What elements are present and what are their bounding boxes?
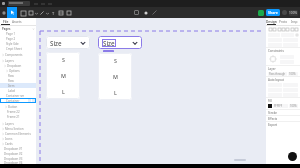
staticText: Menu Section (5, 127, 24, 131)
button[interactable]: Size (46, 36, 90, 49)
button[interactable]: Cards (0, 141, 36, 146)
staticText: Frame 22 (7, 110, 20, 114)
button[interactable]: Common Elements (0, 131, 36, 136)
button[interactable]: Container sm (0, 93, 36, 98)
button[interactable]: Shape tools (27, 9, 38, 17)
button[interactable]: M (46, 67, 80, 83)
button[interactable]: Component (143, 10, 148, 15)
button[interactable]: Page 2 (0, 36, 36, 41)
button[interactable]: M (98, 68, 132, 84)
staticText: Frame 21 (7, 115, 20, 119)
button[interactable]: Design (266, 18, 277, 25)
button[interactable]: Constraints (268, 54, 278, 64)
staticText: Layers (5, 59, 14, 63)
button[interactable]: Pages (0, 26, 36, 31)
button[interactable]: Button (0, 104, 36, 109)
button[interactable]: Assets (11, 18, 22, 25)
button[interactable]: Menu Section (0, 126, 36, 131)
button[interactable]: Align 2 (277, 27, 281, 31)
button[interactable]: Frame tool (19, 9, 27, 17)
staticText: M (113, 73, 118, 80)
button[interactable]: Dropdown V1 (0, 146, 36, 151)
staticText: Container sm (6, 94, 25, 98)
button[interactable]: Resources (57, 9, 65, 17)
button[interactable]: Share (266, 9, 280, 16)
button[interactable]: File (0, 18, 11, 25)
button[interactable]: L (98, 84, 132, 100)
button[interactable]: Comment (65, 9, 73, 17)
button[interactable]: Layers (0, 121, 36, 126)
button[interactable]: Layers (0, 58, 36, 63)
staticText: Auto layout (268, 78, 284, 82)
button[interactable]: Dropdown V2 (0, 151, 36, 156)
button[interactable]: Pen tools (38, 9, 49, 17)
button[interactable]: Align 1 (272, 27, 276, 31)
staticText: 100% (289, 11, 298, 15)
button[interactable]: Help (288, 152, 297, 161)
button[interactable]: 100% (288, 72, 298, 76)
button[interactable]: Dropdown (0, 63, 36, 68)
button[interactable]: Align 3 (281, 27, 285, 31)
button[interactable]: Item (0, 83, 36, 88)
button[interactable]: Align 4 (285, 27, 289, 31)
button[interactable] (8, 1, 30, 6)
button[interactable]: S (46, 52, 80, 67)
button[interactable]: Move tool (7, 7, 17, 18)
staticText: Proto (279, 20, 288, 24)
button[interactable]: Container (0, 98, 36, 103)
button[interactable]: Row (0, 73, 36, 78)
button[interactable]: Options (0, 68, 36, 73)
button[interactable]: Size (98, 36, 142, 49)
button[interactable]: Frame 21 (0, 114, 36, 119)
button[interactable]: Dropdown V3 (0, 156, 36, 161)
button[interactable]: Row (0, 78, 36, 83)
button[interactable]: 100% (289, 10, 298, 16)
button[interactable]: Present (258, 10, 264, 16)
button[interactable]: Pen tool (152, 10, 157, 15)
button[interactable]: Proto (277, 18, 289, 25)
button[interactable]: Align 5 (290, 27, 294, 31)
button[interactable]: Align 6 (294, 27, 298, 31)
staticText: Assets (12, 20, 22, 24)
button[interactable]: Page 1 (0, 31, 36, 36)
button[interactable]: Main menu (1, 10, 7, 16)
button[interactable]: Text tool (49, 9, 57, 17)
button[interactable]: Style Gde (0, 41, 36, 46)
button[interactable]: Label (0, 88, 36, 93)
button[interactable]: Dropdown V4 (0, 161, 36, 164)
button[interactable]: Frame 22 (0, 109, 36, 114)
button[interactable]: Insp (289, 18, 300, 25)
button[interactable]: Menu (2, 2, 5, 5)
staticText: Pages (2, 27, 11, 31)
button[interactable]: Align 0 (268, 27, 272, 31)
button[interactable]: L (46, 83, 80, 99)
button[interactable]: Account (282, 10, 287, 15)
staticText: Stroke (268, 111, 277, 115)
button[interactable]: Icons (0, 136, 36, 141)
button[interactable]: 100% (289, 104, 298, 108)
button[interactable]: Components (0, 52, 36, 57)
button[interactable]: Frame (134, 10, 139, 15)
button[interactable]: Pass through (268, 72, 287, 76)
button[interactable]: Cmpt Sheet (0, 46, 36, 51)
button[interactable]: Lock ratio (295, 33, 298, 36)
button[interactable]: FFFFFF (273, 104, 288, 108)
staticText: Effects (268, 117, 278, 121)
button[interactable]: S (98, 53, 132, 68)
